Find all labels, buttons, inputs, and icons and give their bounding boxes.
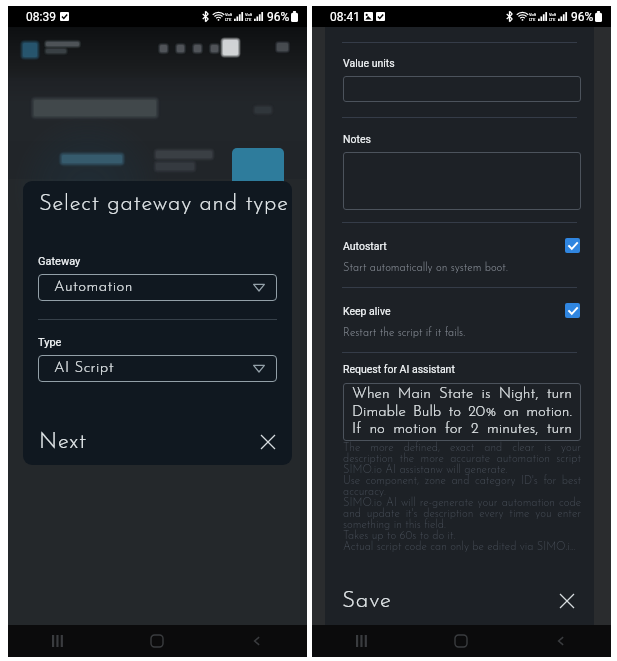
- staticText: LTE2: [549, 17, 557, 22]
- button[interactable]: [343, 76, 581, 102]
- staticText: When Main State is Night, turn Dimable B…: [352, 387, 572, 437]
- button[interactable]: Next: [39, 431, 87, 453]
- button[interactable]: Back: [511, 625, 611, 657]
- button[interactable]: AI Script: [38, 355, 277, 382]
- staticText: Save: [342, 590, 392, 613]
- staticText: Autostart: [343, 240, 387, 252]
- button[interactable]: Autostart: [325, 232, 594, 280]
- button[interactable]: When Main State is Night, turn Dimable B…: [343, 383, 581, 441]
- staticText: 96%: [267, 10, 290, 24]
- button[interactable]: Close: [255, 429, 281, 455]
- staticText: 08:39: [26, 10, 56, 24]
- button[interactable]: Keep alive: [325, 297, 594, 345]
- button[interactable]: Save: [342, 590, 392, 613]
- button[interactable]: Automation: [38, 274, 277, 301]
- staticText: Volt: [225, 12, 233, 17]
- button[interactable]: Home: [411, 625, 511, 657]
- staticText: Volt: [529, 12, 537, 17]
- staticText: The more defined, exact and clear is you…: [343, 443, 581, 553]
- button[interactable]: Recents: [312, 625, 411, 657]
- staticText: LTE2: [245, 17, 253, 22]
- staticText: LTE1: [529, 17, 537, 22]
- staticText: Next: [39, 431, 87, 453]
- staticText: Automation: [54, 280, 133, 295]
- staticText: Volt: [245, 12, 253, 17]
- button[interactable]: Home: [107, 625, 207, 657]
- button[interactable]: [343, 152, 581, 210]
- staticText: Type: [38, 336, 62, 349]
- staticText: Select gateway and type: [39, 193, 289, 215]
- button[interactable]: Back: [207, 625, 307, 657]
- staticText: 08:41: [330, 10, 360, 24]
- button[interactable]: Recents: [8, 625, 107, 657]
- staticText: Notes: [343, 133, 371, 145]
- staticText: Keep alive: [343, 305, 391, 317]
- button[interactable]: Close: [554, 588, 580, 614]
- staticText: Volt: [549, 12, 557, 17]
- staticText: AI Script: [54, 361, 114, 376]
- staticText: Value units: [343, 57, 395, 69]
- staticText: LTE1: [225, 17, 233, 22]
- staticText: 96%: [571, 10, 594, 24]
- staticText: Request for AI assistant: [343, 363, 455, 375]
- staticText: Start automatically on system boot.: [343, 263, 508, 274]
- staticText: Gateway: [38, 255, 81, 268]
- staticText: Restart the script if it fails.: [343, 328, 465, 339]
